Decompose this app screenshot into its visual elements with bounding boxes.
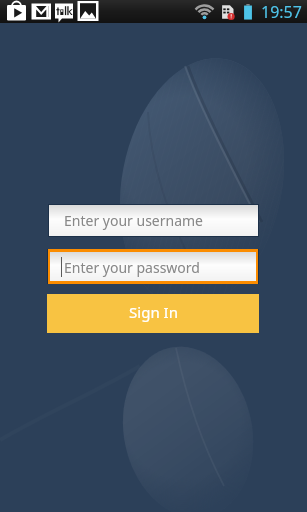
staticText: 19:57 (261, 1, 302, 23)
button[interactable]: Enter your username (49, 205, 258, 236)
button[interactable]: Enter your password (50, 252, 256, 281)
staticText: Sign In (129, 302, 178, 322)
staticText: Enter your username (64, 211, 204, 230)
staticText: Enter your password (64, 258, 200, 277)
button[interactable]: Sign In (47, 294, 259, 333)
